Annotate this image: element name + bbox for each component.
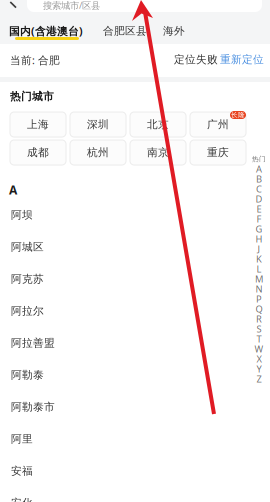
staticText: N [255,283,262,295]
button[interactable]: 上海 [10,112,66,137]
button[interactable]: 国内(含港澳台) [9,24,85,38]
staticText: 重庆 [207,146,229,159]
staticText: 阿勒泰 [11,368,44,381]
staticText: 成都 [27,146,49,159]
button[interactable]: 杭州 [70,140,126,165]
button[interactable]: 阿拉尔 [0,295,245,327]
staticText: Q [255,303,262,315]
staticText: L [256,263,261,275]
staticText: 海外 [163,24,185,37]
button[interactable]: 阿里 [0,423,245,455]
staticText: S [256,323,261,335]
staticText: 广州 [207,118,229,131]
button[interactable]: 阿勒泰 [0,359,245,391]
staticText: B [256,173,262,185]
staticText: P [256,293,262,305]
staticText: 阿拉善盟 [11,336,55,349]
staticText: 合肥区县 [103,24,147,37]
staticText: 阿拉尔 [11,304,44,317]
staticText: 南京 [147,146,169,159]
staticText: A [256,163,262,175]
button[interactable]: 南京 [130,140,186,165]
staticText: C [256,183,262,195]
staticText: 上海 [27,118,49,131]
staticText: 阿坝 [11,208,33,221]
staticText: 热门 [252,155,266,163]
staticText: G [255,223,262,235]
staticText: 阿勒泰市 [11,400,55,413]
staticText: 热门城市 [10,90,54,103]
staticText: 定位失败 [174,53,218,66]
button[interactable]: 安化 [0,487,245,502]
staticText: 深圳 [87,118,109,131]
staticText: M [255,273,263,285]
staticText: 杭州 [87,146,109,159]
button[interactable]: 重庆 [190,140,246,165]
staticText: 北京 [147,118,169,131]
button[interactable]: 广州 [190,112,246,137]
staticText: Y [256,363,261,375]
staticText: H [255,233,262,245]
button[interactable]: 阿城区 [0,231,245,263]
staticText: F [256,213,261,225]
staticText: E [256,203,261,215]
staticText: 阿城区 [11,240,44,253]
staticText: D [255,193,262,205]
staticText: W [254,343,263,355]
button[interactable]: 合肥区县 [103,24,147,38]
button[interactable]: 深圳 [70,112,126,137]
staticText: T [256,333,261,345]
staticText: 阿克苏 [11,272,44,285]
staticText: X [256,353,261,365]
staticText: 搜索城市/区县 [43,0,100,11]
button[interactable]: 北京 [130,112,186,137]
staticText: J [257,243,260,255]
staticText: Z [256,373,261,385]
button[interactable]: 阿克苏 [0,263,245,295]
staticText: 当前: 合肥 [10,53,60,67]
staticText: R [256,313,262,325]
staticText: K [256,253,262,265]
staticText: 重新定位 [220,53,264,66]
button[interactable]: 海外 [163,24,185,38]
button[interactable]: 阿坝 [0,199,245,231]
button[interactable]: Back [0,0,22,12]
button[interactable]: 安福 [0,455,245,487]
staticText: A [9,182,17,198]
button[interactable]: 成都 [10,140,66,165]
staticText: 安化 [11,496,33,502]
button[interactable]: 重新定位 [220,53,264,66]
staticText: 阿里 [11,432,33,445]
staticText: 长隆 [231,111,245,119]
button[interactable]: 阿拉善盟 [0,327,245,359]
button[interactable]: 阿勒泰市 [0,391,245,423]
staticText: 国内(含港澳台) [9,24,83,38]
staticText: 安福 [11,464,33,477]
